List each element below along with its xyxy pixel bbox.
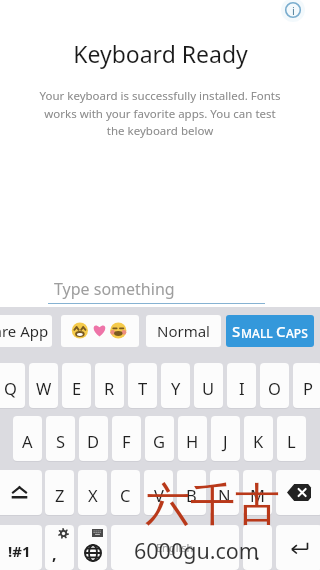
staticText: , xyxy=(52,543,57,565)
staticText: L xyxy=(287,430,296,452)
button[interactable]: Z xyxy=(45,470,74,515)
staticText: !#1 xyxy=(8,541,31,561)
button[interactable]: Q xyxy=(0,363,25,408)
staticText: J xyxy=(223,430,228,452)
staticText: Share App xyxy=(0,321,49,341)
button[interactable]: T xyxy=(128,363,157,408)
button[interactable]: I xyxy=(227,363,256,408)
button[interactable]: H xyxy=(178,416,207,461)
button[interactable]: Y xyxy=(161,363,190,408)
button[interactable]: V xyxy=(144,470,173,515)
button[interactable]: Normal xyxy=(146,315,221,347)
button[interactable]: F xyxy=(112,416,141,461)
button[interactable]: Comma xyxy=(45,525,74,570)
button[interactable]: X xyxy=(78,470,107,515)
button[interactable]: G xyxy=(145,416,174,461)
staticText: 6000gu.com xyxy=(134,536,259,565)
button[interactable]: S xyxy=(226,315,314,347)
button[interactable]: Type something xyxy=(48,278,265,300)
staticText: English xyxy=(156,540,194,555)
staticText: G xyxy=(153,430,166,452)
staticText: Keyboard Ready xyxy=(73,38,248,69)
staticText: Your keyboard is successfully installed.… xyxy=(34,88,286,138)
staticText: Y xyxy=(171,377,181,399)
button[interactable]: L xyxy=(277,416,306,461)
staticText: P xyxy=(303,377,313,399)
staticText: K xyxy=(253,430,264,452)
button[interactable]: Shift xyxy=(0,470,42,515)
staticText: 六千古 xyxy=(145,477,280,534)
staticText: X xyxy=(88,484,98,506)
staticText: E xyxy=(72,377,82,399)
button[interactable]: E xyxy=(62,363,91,408)
staticText: i xyxy=(292,3,295,18)
staticText: I xyxy=(239,377,245,399)
button[interactable]: M xyxy=(243,470,272,515)
staticText: Q xyxy=(4,377,17,399)
button[interactable]: O xyxy=(260,363,289,408)
staticText: T xyxy=(138,377,148,399)
button[interactable]: S xyxy=(46,416,75,461)
staticText: B xyxy=(186,484,197,506)
button[interactable]: Info xyxy=(281,0,305,22)
button[interactable]: A xyxy=(13,416,42,461)
staticText: U xyxy=(202,377,215,399)
staticText: D xyxy=(87,430,100,452)
button[interactable]: Symbols xyxy=(0,525,42,570)
button[interactable]: K xyxy=(244,416,273,461)
button[interactable]: W xyxy=(29,363,58,408)
button[interactable]: Share App xyxy=(0,315,52,347)
button[interactable]: Space xyxy=(111,525,239,570)
staticText: M xyxy=(250,484,265,506)
staticText: Z xyxy=(55,484,65,506)
staticText: R xyxy=(104,377,115,399)
button[interactable]: N xyxy=(210,470,239,515)
staticText: C xyxy=(120,484,131,506)
button[interactable]: Backspace xyxy=(276,470,320,515)
staticText: H xyxy=(186,430,199,452)
button[interactable]: B xyxy=(177,470,206,515)
staticText: N xyxy=(218,484,231,506)
button[interactable] xyxy=(61,315,139,347)
button[interactable]: R xyxy=(95,363,124,408)
staticText: Type something xyxy=(54,278,175,300)
button[interactable]: P xyxy=(293,363,320,408)
staticText: S xyxy=(232,321,241,341)
button[interactable]: Period xyxy=(243,525,272,570)
staticText: V xyxy=(154,484,164,506)
button[interactable]: C xyxy=(111,470,140,515)
button[interactable]: J xyxy=(211,416,240,461)
button[interactable]: Change language xyxy=(78,525,107,570)
staticText: A xyxy=(22,430,33,452)
button[interactable]: U xyxy=(194,363,223,408)
staticText: . xyxy=(255,543,260,565)
staticText: S xyxy=(56,430,66,452)
staticText: APS xyxy=(286,325,308,341)
staticText: W xyxy=(36,377,52,399)
staticText: Normal xyxy=(157,321,210,341)
staticText: C xyxy=(276,321,286,341)
button[interactable]: D xyxy=(79,416,108,461)
staticText: O xyxy=(268,377,281,399)
staticText: F xyxy=(122,430,131,452)
button[interactable]: Enter xyxy=(276,525,320,570)
staticText: MALL xyxy=(241,325,276,341)
